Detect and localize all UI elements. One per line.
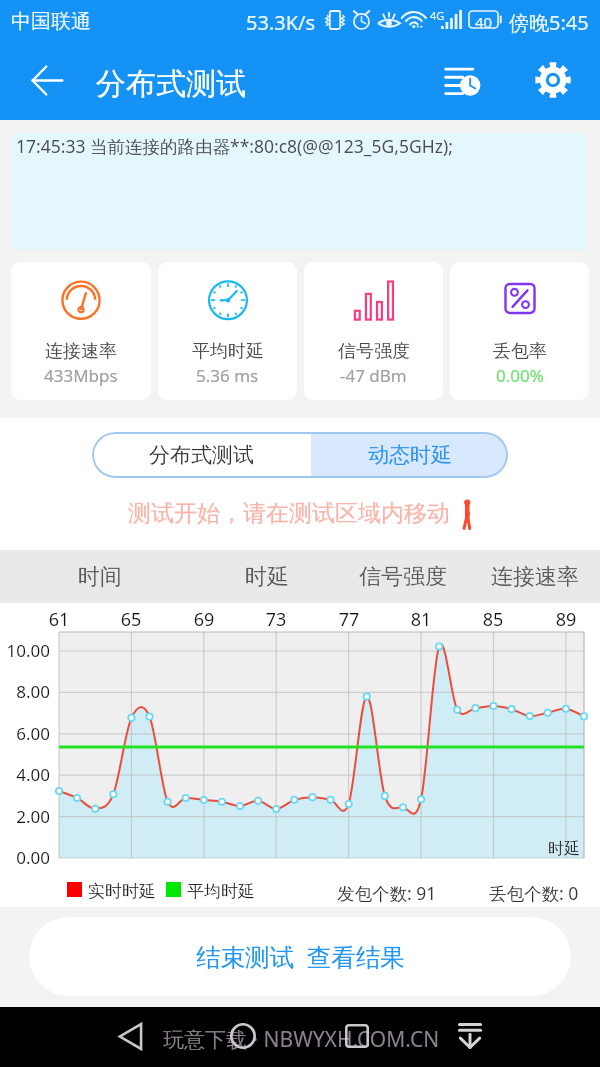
- button[interactable]: Back: [23, 56, 71, 104]
- button[interactable]: 信号强度: [304, 262, 443, 400]
- button[interactable]: 连接速率: [11, 262, 151, 400]
- staticText: 分布式测试: [149, 442, 254, 468]
- button[interactable]: 时间: [55, 550, 145, 603]
- staticText: 73: [256, 607, 296, 632]
- button[interactable]: Back: [106, 1012, 154, 1060]
- staticText: 0.00%: [496, 364, 544, 387]
- button[interactable]: 丢包率: [450, 262, 589, 400]
- staticText: 6.00: [0, 722, 50, 745]
- staticText: 丢包个数: 0: [489, 881, 579, 905]
- staticText: 玩意下载 · NBWYXH.COM.CN: [163, 1025, 440, 1054]
- button[interactable]: Recents: [333, 1012, 381, 1060]
- button[interactable]: Settings: [525, 52, 581, 108]
- staticText: 4.00: [0, 763, 50, 786]
- staticText: 5.36 ms: [196, 364, 259, 387]
- staticText: 傍晚5:45: [509, 9, 589, 36]
- staticText: 测试开始，请在测试区域内移动: [128, 499, 450, 528]
- staticText: 4G: [430, 8, 445, 23]
- button[interactable]: 动态时延: [311, 432, 508, 478]
- staticText: 81: [401, 607, 441, 632]
- staticText: 433Mbps: [44, 364, 118, 387]
- staticText: 平均时延: [187, 881, 255, 902]
- staticText: 分布式测试: [96, 65, 246, 103]
- staticText: 17:45:33 当前连接的路由器**:80:c8(@@123_5G,5GHz)…: [16, 134, 453, 158]
- button[interactable]: 分布式测试: [92, 432, 311, 478]
- staticText: 61: [39, 607, 79, 632]
- staticText: 时延: [548, 839, 580, 859]
- button[interactable]: Downloads: [446, 1011, 494, 1059]
- staticText: 0.00: [0, 846, 50, 869]
- staticText: 连接速率: [45, 340, 117, 363]
- staticText: 40: [469, 12, 498, 32]
- staticText: 连接速率: [491, 563, 579, 591]
- staticText: -47 dBm: [340, 364, 407, 387]
- staticText: 动态时延: [368, 442, 452, 468]
- staticText: 中国联通: [11, 9, 91, 34]
- staticText: 53.3K/s: [246, 9, 316, 36]
- button[interactable]: 连接速率: [469, 550, 600, 603]
- staticText: 89: [546, 607, 586, 632]
- staticText: 丢包率: [493, 340, 547, 363]
- staticText: 10.00: [0, 639, 50, 662]
- button[interactable]: 结束测试 查看结果: [29, 917, 571, 996]
- button[interactable]: History: [434, 52, 490, 108]
- staticText: 2.00: [0, 805, 50, 828]
- staticText: 信号强度: [359, 563, 447, 591]
- staticText: 77: [329, 607, 369, 632]
- staticText: 时延: [245, 563, 289, 591]
- staticText: 信号强度: [338, 340, 410, 363]
- staticText: 发包个数: 91: [337, 881, 437, 905]
- staticText: 时间: [78, 563, 122, 591]
- staticText: 65: [111, 607, 151, 632]
- staticText: 结束测试 查看结果: [196, 940, 405, 973]
- staticText: 平均时延: [192, 340, 264, 363]
- staticText: 69: [184, 607, 224, 632]
- button[interactable]: 平均时延: [158, 262, 297, 400]
- staticText: 85: [473, 607, 513, 632]
- button[interactable]: 信号强度: [337, 550, 469, 603]
- button[interactable]: 时延: [222, 550, 312, 603]
- staticText: 实时时延: [88, 881, 156, 902]
- staticText: 8.00: [0, 680, 50, 703]
- button[interactable]: Home: [219, 1012, 267, 1060]
